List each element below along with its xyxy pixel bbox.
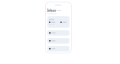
staticText: Updated now bbox=[47, 13, 56, 15]
staticText: 12 new bbox=[56, 10, 61, 11]
button[interactable] bbox=[47, 16, 69, 28]
button[interactable] bbox=[47, 46, 69, 51]
staticText: Inbox bbox=[47, 9, 55, 12]
button[interactable] bbox=[47, 38, 69, 43]
button[interactable] bbox=[47, 30, 69, 36]
